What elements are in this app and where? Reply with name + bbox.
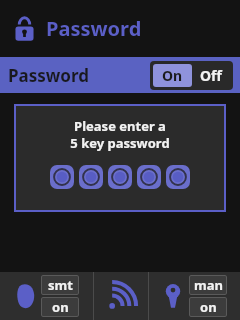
other: Lock — [14, 16, 35, 42]
button[interactable]: Password key slot — [137, 165, 161, 189]
button[interactable]: On — [162, 66, 183, 85]
button[interactable]: On — [153, 64, 230, 87]
button[interactable]: Smart mode — [0, 272, 93, 320]
button[interactable]: Password key slot — [50, 165, 74, 189]
button[interactable]: Manual mode — [149, 272, 240, 320]
staticText: on — [52, 298, 69, 316]
button[interactable]: Password key slot — [166, 165, 190, 189]
staticText: smt — [48, 276, 73, 294]
staticText: Password — [46, 15, 142, 42]
button[interactable]: Off — [200, 66, 222, 85]
staticText: man — [194, 276, 223, 294]
staticText: Password — [8, 64, 89, 87]
staticText: on — [200, 298, 217, 316]
button[interactable]: Password key slot — [79, 165, 103, 189]
staticText: Please enter a 5 key password — [70, 117, 170, 152]
button[interactable]: Password key slot — [108, 165, 132, 189]
button[interactable]: Signal — [94, 272, 148, 320]
staticText: On — [162, 66, 183, 85]
staticText: Off — [200, 66, 222, 85]
